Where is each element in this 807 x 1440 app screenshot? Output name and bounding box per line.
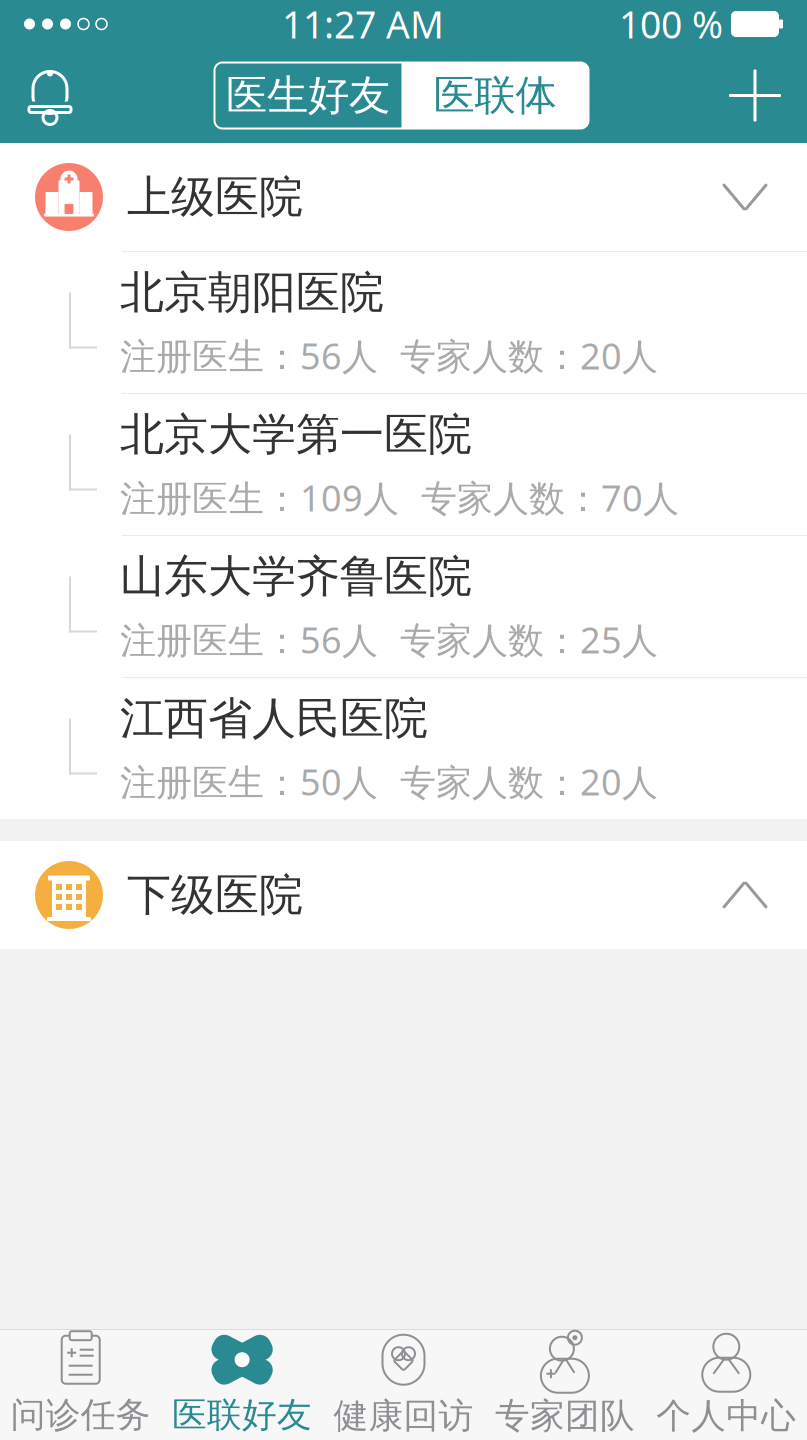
staticText: 注册医生：56人 专家人数：25人 <box>120 616 658 663</box>
staticText: 注册医生：56人 专家人数：20人 <box>120 332 658 379</box>
button[interactable]: 添加 <box>727 67 783 123</box>
button[interactable]: 个人中心 <box>646 1330 807 1440</box>
staticText: 下级医院 <box>127 868 303 922</box>
button[interactable]: 北京朝阳医院 <box>0 251 807 393</box>
button[interactable]: 问诊任务 <box>0 1330 161 1440</box>
staticText: 山东大学齐鲁医院 <box>120 550 472 604</box>
staticText: 北京朝阳医院 <box>120 266 384 320</box>
staticText: 100 % <box>619 0 723 49</box>
staticText: 问诊任务 <box>11 1394 151 1436</box>
button[interactable]: 通知 <box>24 66 76 124</box>
staticText: 北京大学第一医院 <box>120 408 472 462</box>
staticText: 江西省人民医院 <box>120 692 428 746</box>
button[interactable]: 江西省人民医院 <box>0 677 807 819</box>
button[interactable]: 医联体 <box>401 62 588 128</box>
staticText: 个人中心 <box>656 1395 796 1437</box>
staticText: 健康回访 <box>333 1395 473 1437</box>
button[interactable]: 专家团队 <box>484 1330 646 1440</box>
button[interactable]: 山东大学齐鲁医院 <box>0 535 807 677</box>
staticText: 专家团队 <box>495 1395 635 1437</box>
button[interactable]: 健康回访 <box>323 1330 484 1440</box>
staticText: 医生好友 <box>226 70 390 121</box>
button[interactable]: 医联好友 <box>161 1330 323 1440</box>
staticText: 医联体 <box>433 70 556 121</box>
staticText: 注册医生：109人 专家人数：70人 <box>120 474 679 521</box>
button[interactable]: 北京大学第一医院 <box>0 393 807 535</box>
button[interactable]: 上级医院 <box>0 143 807 251</box>
button[interactable]: 下级医院 <box>0 841 807 949</box>
staticText: 医联好友 <box>172 1394 312 1436</box>
button[interactable]: 医生好友 <box>214 62 401 128</box>
staticText: 11:27 AM <box>282 0 444 49</box>
staticText: 上级医院 <box>127 170 303 224</box>
staticText: 注册医生：50人 专家人数：20人 <box>120 758 658 805</box>
